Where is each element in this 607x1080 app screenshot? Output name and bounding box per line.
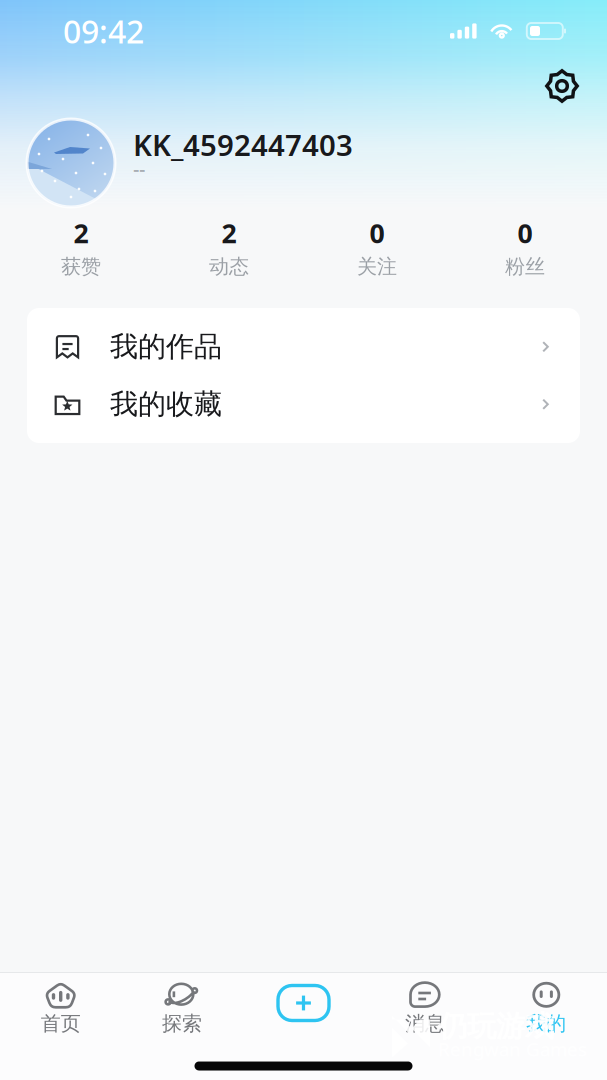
staticText: 2 [221,215,236,251]
staticText: 2 [73,215,88,251]
button[interactable]: Create [243,973,364,1052]
button[interactable]: 探索 [121,973,243,1052]
staticText: KK_4592447403 [133,125,353,164]
button[interactable]: 消息 [364,973,486,1052]
button[interactable]: 2 [7,221,155,276]
staticText: -- [133,156,145,182]
staticText: 我的作品 [110,330,222,364]
button[interactable]: 0 [303,221,451,276]
staticText: 我的收藏 [110,387,222,421]
button[interactable]: 2 [155,221,303,276]
staticText: 0 [517,215,532,251]
staticText: 消息 [405,1011,445,1036]
button[interactable]: 我的 [486,973,607,1052]
button[interactable]: 我的收藏 [27,375,580,433]
staticText: 仍玩游戏 [438,1008,554,1044]
staticText: 0 [369,215,384,251]
button[interactable]: 我的作品 [27,318,580,375]
staticText: 首页 [41,1011,81,1036]
staticText: 探索 [162,1011,202,1036]
button[interactable]: 首页 [0,973,121,1052]
staticText: 获赞 [61,254,101,279]
staticText: 粉丝 [505,254,545,279]
staticText: 关注 [357,254,397,279]
button[interactable]: 0 [451,221,599,276]
staticText: 09:42 [63,10,144,52]
staticText: 我的 [526,1011,566,1036]
button[interactable]: Settings [545,69,607,103]
staticText: 动态 [209,254,249,279]
